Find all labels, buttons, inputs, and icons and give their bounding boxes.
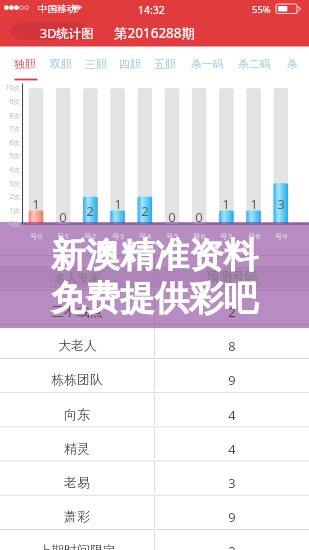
staticText: 杀一码 [191, 58, 224, 72]
staticText: 1 [222, 195, 230, 213]
staticText: 3D统计图 [40, 25, 94, 42]
staticText: 栋栋团队 [51, 372, 103, 388]
staticText: 0 [59, 208, 67, 226]
staticText: 号5 [166, 231, 178, 241]
staticText: 1 [114, 195, 122, 213]
staticText: 中国移动 [38, 3, 76, 15]
button[interactable]: 栋栋团队 [0, 358, 309, 392]
staticText: 0次 [9, 219, 20, 228]
button[interactable]: 三不或点 [0, 290, 309, 324]
staticText: 萧彩 [64, 509, 90, 525]
button[interactable]: Tab 7 [233, 47, 277, 82]
staticText: 精灵 [64, 441, 90, 457]
staticText: 三胆 [85, 58, 107, 72]
button[interactable]: 上期时间限定 [0, 529, 309, 550]
staticText: 名人专家 [54, 271, 101, 286]
staticText: 1 [250, 195, 258, 213]
staticText: 14:32 [138, 3, 165, 17]
staticText: 免费提供彩吧 [51, 277, 258, 320]
button[interactable]: Tab 8 [277, 47, 307, 82]
staticText: 三不或点 [51, 304, 103, 320]
staticText: 55% [252, 3, 271, 16]
staticText: 8 [228, 337, 236, 355]
staticText: 9 [228, 371, 236, 389]
staticText: 1 [32, 195, 40, 213]
button[interactable]: Back: 3D statistics [0, 20, 100, 47]
button[interactable]: 向东 [0, 392, 309, 426]
staticText: 五胆 [154, 58, 176, 72]
staticText: 杀 [287, 58, 298, 72]
staticText: 预测号码 [206, 269, 258, 285]
staticText: 新澳精准资料 [51, 234, 258, 277]
staticText: 6次 [9, 138, 20, 147]
staticText: 2 [86, 202, 94, 220]
button[interactable]: Tab 3 [80, 47, 112, 82]
button[interactable]: Tab 2 [45, 47, 77, 82]
staticText: 四胆 [119, 58, 141, 72]
staticText: 独胆 [14, 58, 36, 72]
staticText: 号6 [193, 231, 205, 241]
staticText: 双胆 [50, 58, 72, 72]
staticText: 4次 [9, 165, 20, 174]
staticText: 1次 [9, 206, 20, 215]
staticText: 老易 [64, 475, 90, 491]
staticText: 号2 [84, 231, 96, 241]
staticText: 3 [277, 195, 285, 213]
staticText: 2 [141, 202, 149, 220]
staticText: 号7 [220, 231, 232, 241]
button[interactable]: Tab 1 [9, 47, 41, 82]
staticText: 杀二码 [238, 58, 271, 72]
staticText: 3 [228, 542, 236, 550]
staticText: 号8 [248, 231, 260, 241]
staticText: 0 [195, 208, 203, 226]
staticText: 号9 [275, 231, 287, 241]
staticText: 8次 [9, 111, 20, 120]
staticText: 上期时间限定 [38, 543, 116, 550]
staticText: 10次 [5, 83, 20, 92]
staticText: 2次 [9, 192, 20, 201]
staticText: 号3 [112, 231, 124, 241]
staticText: 向东 [64, 407, 90, 423]
staticText: 9 [228, 508, 236, 526]
button[interactable]: 精灵 [0, 426, 309, 460]
staticText: 5次 [9, 151, 20, 160]
staticText: 4 [228, 406, 236, 424]
staticText: 0 [168, 208, 176, 226]
button[interactable]: Tab 5 [149, 47, 181, 82]
staticText: 7次 [9, 124, 20, 133]
staticText: 4 [228, 440, 236, 458]
button[interactable]: 大老人 [0, 324, 309, 358]
button[interactable]: 萧彩 [0, 495, 309, 529]
staticText: 号1 [57, 231, 69, 241]
button[interactable]: Table header [0, 255, 309, 289]
staticText: 2 [228, 303, 236, 321]
staticText: 第2016288期 [114, 24, 196, 42]
staticText: 大老人 [58, 338, 97, 354]
staticText: 号4 [139, 231, 151, 241]
staticText: 9次 [9, 97, 20, 106]
staticText: 3次 [9, 179, 20, 188]
button[interactable]: 老易 [0, 461, 309, 495]
staticText: 号0 [30, 231, 42, 241]
button[interactable]: Tab 6 [186, 47, 230, 82]
staticText: 3 [228, 474, 236, 492]
button[interactable]: Tab 4 [114, 47, 146, 82]
